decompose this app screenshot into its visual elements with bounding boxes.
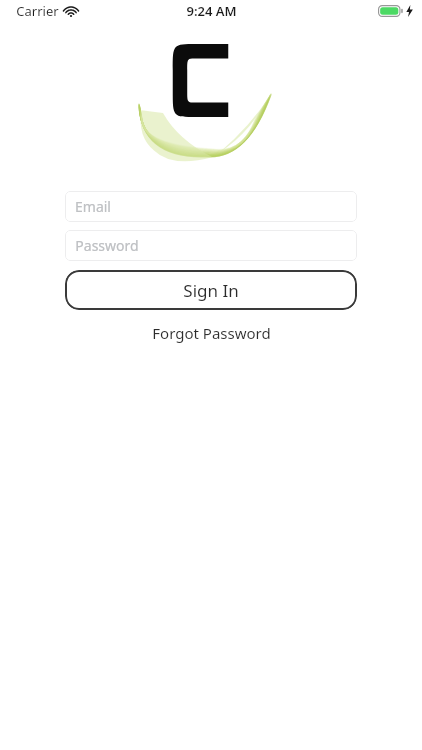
button[interactable]: Email	[65, 191, 357, 222]
staticText: Sign In	[183, 279, 239, 302]
staticText: Password	[75, 236, 139, 255]
button[interactable]: Sign In	[65, 270, 357, 310]
button[interactable]: Password	[65, 230, 357, 261]
staticText: 9:24 AM	[186, 2, 237, 20]
button[interactable]: Forgot Password	[65, 323, 357, 343]
staticText: Forgot Password	[152, 323, 271, 343]
staticText: Carrier	[16, 2, 59, 20]
staticText: Email	[75, 197, 111, 216]
